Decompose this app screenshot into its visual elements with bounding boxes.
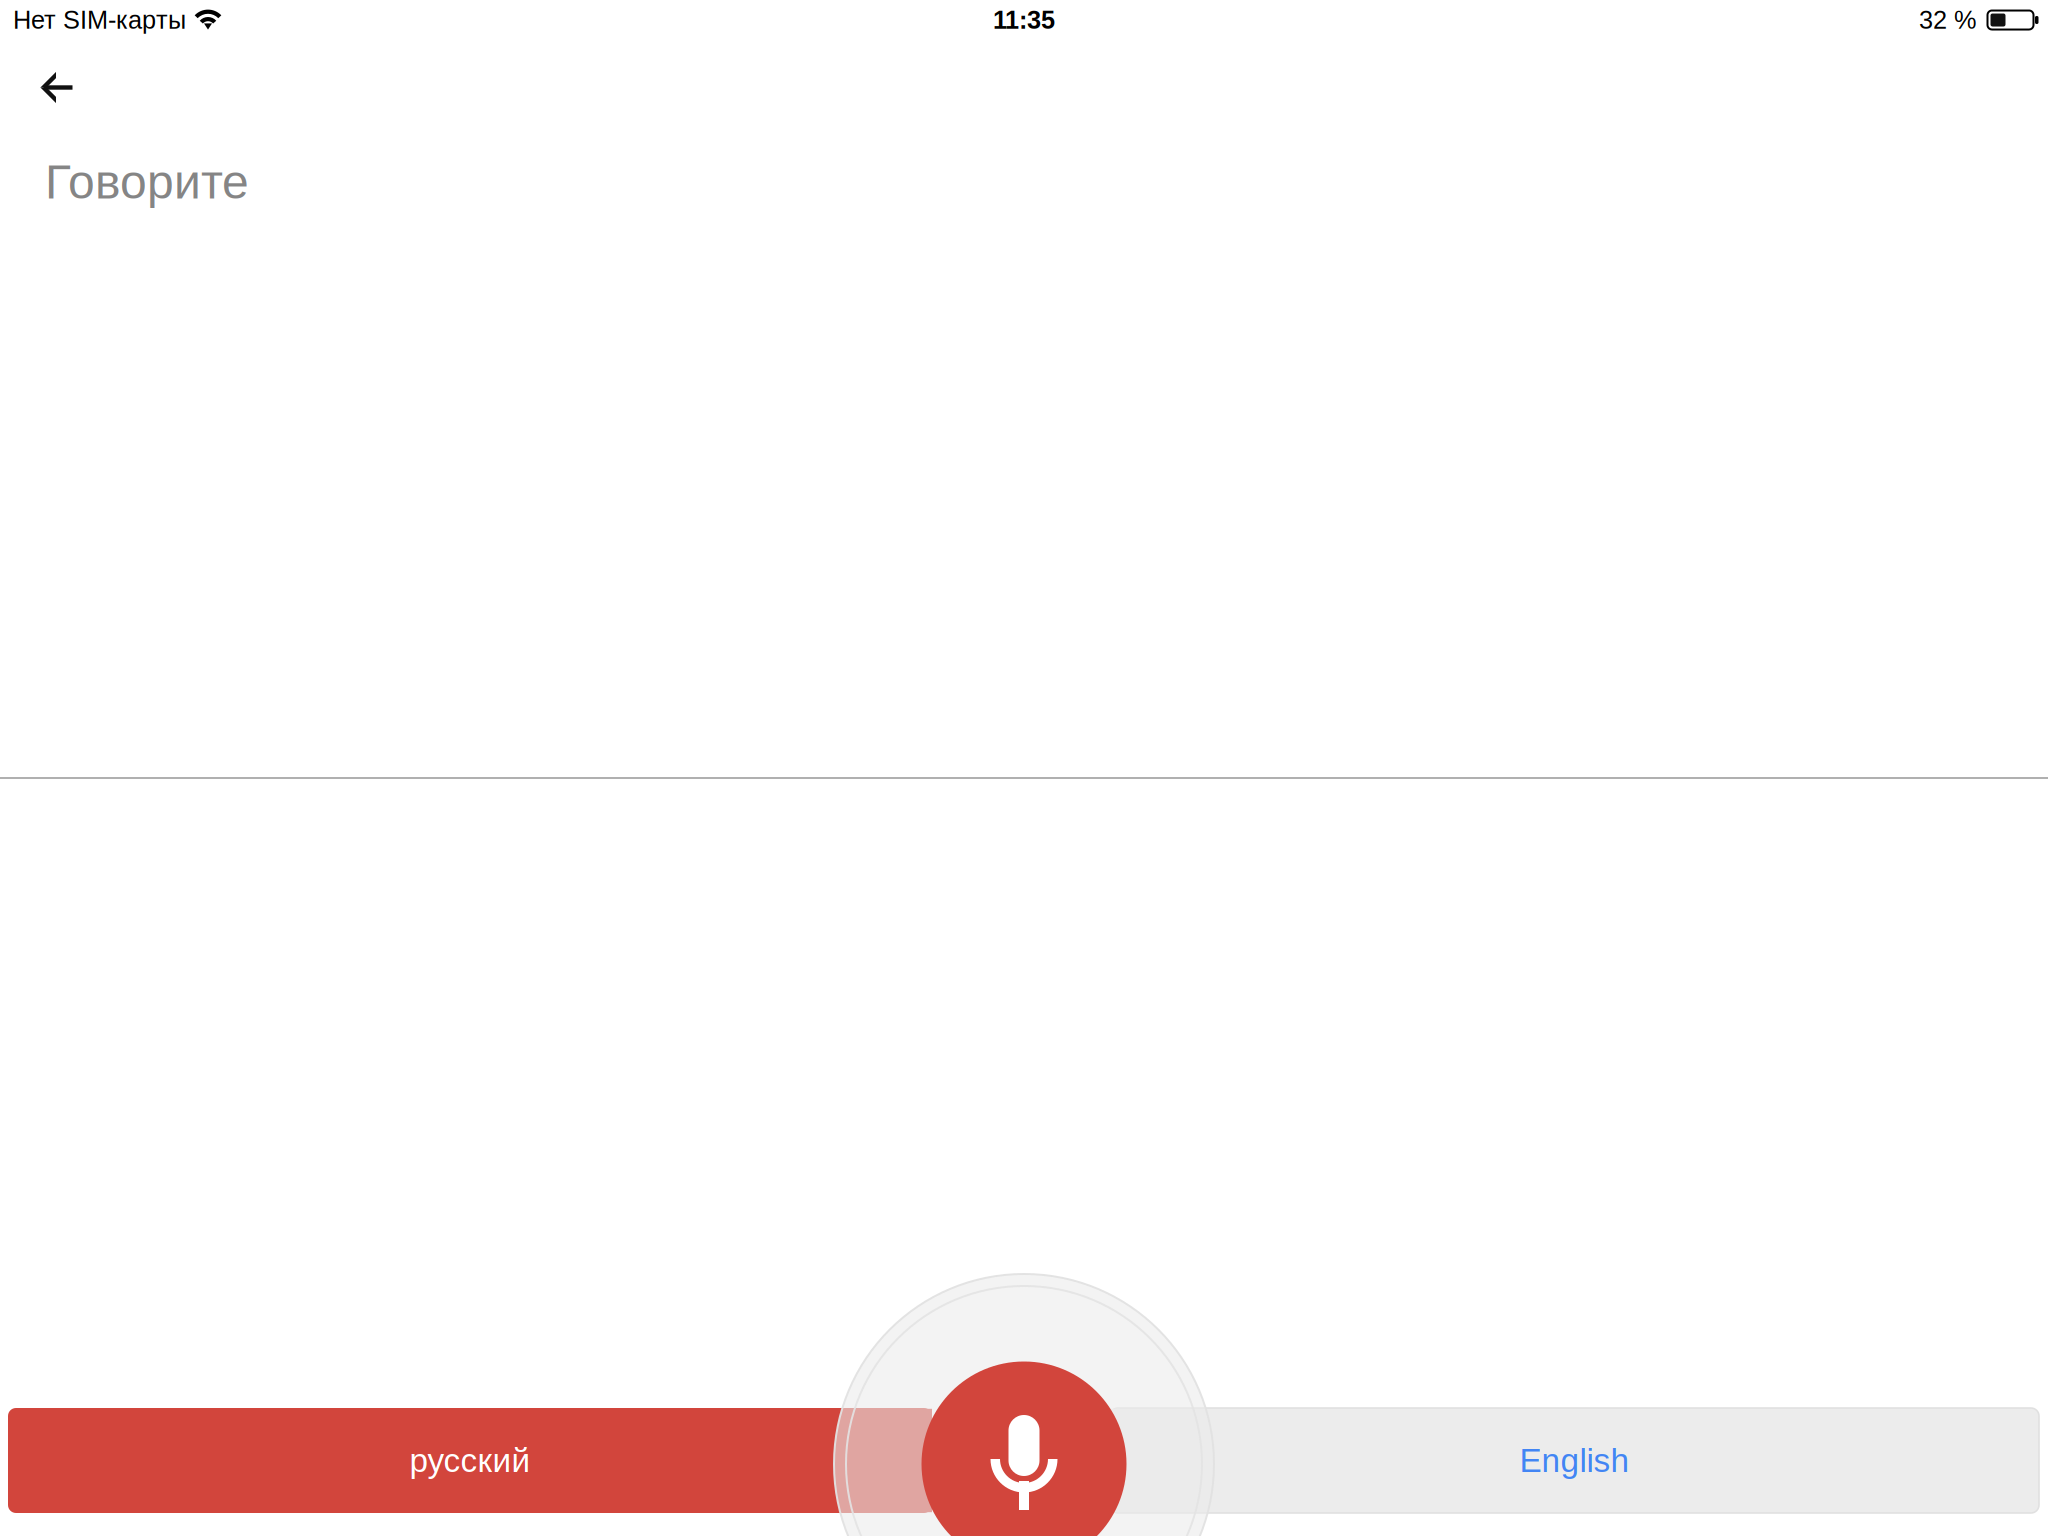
staticText: русский xyxy=(409,1442,530,1479)
button[interactable]: Back xyxy=(22,57,92,119)
staticText: 32 % xyxy=(1919,6,1977,34)
button[interactable]: English xyxy=(1110,1408,2039,1513)
button[interactable]: Record xyxy=(921,1361,1126,1536)
button[interactable]: русский xyxy=(8,1408,932,1513)
staticText: English xyxy=(1519,1442,1629,1479)
staticText: Говорите xyxy=(45,155,249,209)
staticText: Нет SIM-карты xyxy=(13,6,186,34)
staticText: 11:35 xyxy=(993,6,1055,34)
